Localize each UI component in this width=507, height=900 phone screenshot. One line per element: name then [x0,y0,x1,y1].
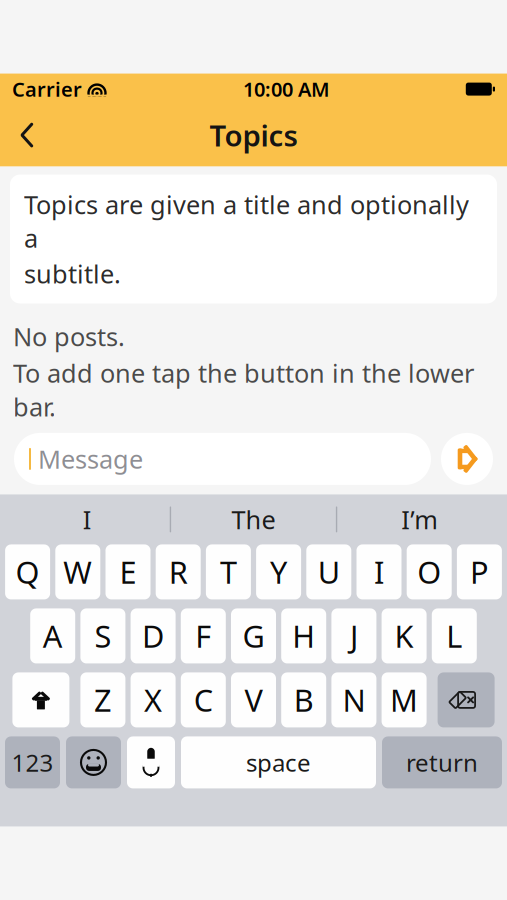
button[interactable]: M [382,672,427,727]
button[interactable]: F [181,608,226,663]
staticText: E [119,552,136,592]
button[interactable]: B [281,672,326,727]
staticText: return [406,746,478,778]
staticText: D [142,616,164,656]
button[interactable]: I’m [337,496,502,542]
staticText: H [292,616,315,656]
staticText: G [242,616,264,656]
button[interactable]: R [156,544,201,599]
button[interactable]: U [306,544,351,599]
button[interactable]: L [432,608,477,663]
staticText: A [43,616,63,656]
staticText: I’m [401,503,438,536]
button[interactable]: T [206,544,251,599]
staticText: space [246,746,311,778]
staticText: N [342,680,365,720]
button[interactable]: J [331,608,376,663]
button[interactable]: return [382,736,502,788]
staticText: P [470,552,489,592]
button[interactable]: P [457,544,502,599]
staticText: J [350,616,358,656]
button[interactable]: O [407,544,452,599]
button[interactable]: A [30,608,75,663]
button[interactable]: 123 [5,736,60,788]
staticText: Z [94,680,112,720]
button[interactable]: K [382,608,427,663]
staticText: O [417,552,441,592]
button[interactable]: The [171,496,336,542]
button[interactable]: Z [80,672,125,727]
button[interactable]: G [231,608,276,663]
staticText: R [169,552,188,592]
button[interactable]: D [131,608,176,663]
staticText: X [144,680,162,720]
button[interactable]: E [105,544,150,599]
staticText: Topics [209,116,297,155]
button[interactable]: Send [441,433,493,485]
staticText: I [374,552,384,592]
staticText: U [318,552,340,592]
button[interactable]: X [131,672,176,727]
staticText: S [94,616,111,656]
staticText: subtitle. [24,257,121,290]
staticText: M [390,680,418,720]
button[interactable]: Emoji [66,736,121,788]
button[interactable]: Shift [12,672,69,727]
staticText: F [195,616,211,656]
staticText: V [244,680,262,720]
staticText: K [395,616,414,656]
staticText: To add one tap the button in the lower b… [13,356,474,423]
staticText: W [63,552,92,592]
button[interactable]: Dictate [127,736,175,788]
button[interactable]: Q [5,544,50,599]
button[interactable]: W [55,544,100,599]
staticText: 123 [11,746,53,778]
staticText: C [194,680,213,720]
staticText: Q [16,552,40,592]
button[interactable]: I [356,544,401,599]
button[interactable]: Y [256,544,301,599]
button[interactable]: V [231,672,276,727]
staticText: Topics are given a title and optionally … [24,188,469,255]
staticText: B [294,680,314,720]
button[interactable]: N [331,672,376,727]
staticText: The [231,503,275,536]
button[interactable]: S [80,608,125,663]
staticText: No posts. [13,319,125,353]
staticText: T [220,552,237,592]
staticText: Y [270,552,287,592]
button[interactable]: space [181,736,376,788]
button[interactable]: C [181,672,226,727]
staticText: I [83,503,92,536]
button[interactable]: I [5,496,170,542]
staticText: L [446,616,462,656]
button[interactable]: Delete [438,672,495,727]
button[interactable]: H [281,608,326,663]
staticText: 10:00 AM [243,76,330,102]
staticText: Message [38,442,143,476]
button[interactable]: Back [0,112,54,158]
staticText: Carrier [12,76,82,102]
